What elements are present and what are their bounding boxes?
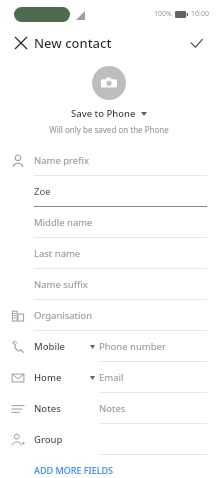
button[interactable]: Add photo: [92, 66, 126, 100]
button[interactable]: Save contact: [181, 28, 211, 58]
staticText: Zoe: [34, 185, 51, 198]
staticText: Group: [34, 433, 63, 446]
button[interactable]: Notes: [0, 393, 217, 424]
button[interactable]: Close: [6, 28, 36, 58]
button[interactable]: Save to Phone: [67, 106, 151, 121]
staticText: Phone number: [99, 340, 166, 353]
staticText: Email: [99, 371, 124, 384]
button[interactable]: Last name: [0, 238, 217, 269]
button[interactable]: Home: [0, 362, 217, 393]
staticText: Middle name: [34, 216, 93, 229]
staticText: ADD MORE FIELDS: [34, 464, 114, 475]
staticText: Last name: [34, 247, 81, 260]
button[interactable]: Group: [0, 424, 217, 455]
button[interactable]: Mobile: [0, 331, 217, 362]
staticText: Organisation: [34, 309, 93, 322]
button[interactable]: Name suffix: [0, 269, 217, 300]
staticText: Name suffix: [34, 278, 88, 291]
staticText: Name prefix: [34, 154, 89, 167]
staticText: Mobile: [34, 340, 65, 353]
button[interactable]: ADD MORE FIELDS: [30, 461, 118, 478]
staticText: 100%: [154, 9, 172, 19]
staticText: Notes: [99, 402, 126, 415]
button[interactable]: Zoe: [0, 176, 217, 207]
button[interactable]: Name prefix: [0, 145, 217, 176]
staticText: Save to Phone: [71, 107, 136, 120]
staticText: Home: [34, 371, 62, 384]
button[interactable]: Middle name: [0, 207, 217, 238]
staticText: Will only be saved on the Phone: [49, 124, 169, 135]
staticText: 10:00: [191, 9, 209, 19]
staticText: Notes: [34, 402, 61, 415]
staticText: New contact: [34, 34, 112, 52]
button[interactable]: Organisation: [0, 300, 217, 331]
